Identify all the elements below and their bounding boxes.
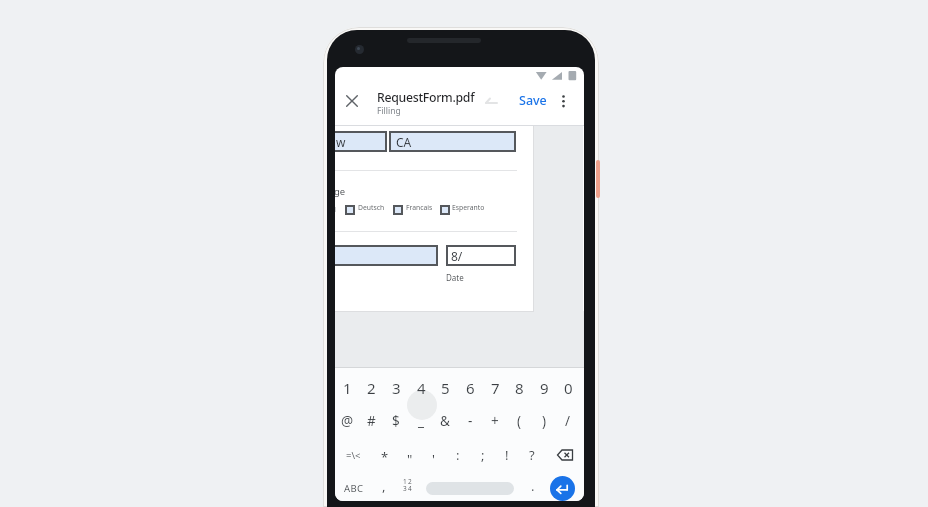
- staticText: 12: [403, 477, 413, 486]
- staticText: Save: [519, 92, 547, 109]
- staticText: *: [381, 448, 389, 466]
- button[interactable]: 0: [557, 378, 579, 398]
- staticText: 2: [367, 378, 376, 398]
- staticText: _: [418, 412, 424, 430]
- staticText: Esperanto: [452, 203, 485, 212]
- staticText: +: [491, 412, 499, 430]
- staticText: ;: [481, 446, 485, 464]
- staticText: CA: [396, 134, 412, 150]
- staticText: Date: [446, 272, 464, 283]
- button[interactable]: /: [557, 411, 579, 431]
- button[interactable]: .: [522, 476, 544, 496]
- button[interactable]: _: [410, 411, 432, 431]
- button[interactable]: #: [360, 411, 382, 431]
- staticText: Francais: [406, 203, 433, 212]
- button[interactable]: 2: [360, 378, 382, 398]
- button[interactable]: *: [374, 447, 396, 467]
- staticText: 6: [466, 378, 475, 398]
- staticText: ge: [335, 185, 346, 198]
- button[interactable]: ;: [472, 445, 494, 465]
- staticText: 7: [491, 378, 500, 398]
- staticText: Deutsch: [358, 203, 385, 212]
- staticText: w: [336, 134, 346, 150]
- button[interactable]: ): [533, 411, 555, 431]
- staticText: :: [456, 446, 460, 464]
- staticText: 3: [392, 378, 401, 398]
- staticText: 34: [403, 484, 413, 493]
- staticText: (: [517, 412, 522, 430]
- button[interactable]: ?: [521, 445, 543, 465]
- staticText: &: [440, 412, 450, 430]
- button[interactable]: @: [336, 411, 358, 431]
- staticText: 5: [441, 378, 450, 398]
- button[interactable]: ,: [373, 476, 395, 496]
- staticText: #: [367, 412, 376, 430]
- button[interactable]: [446, 245, 516, 266]
- button[interactable]: +: [484, 411, 506, 431]
- staticText: !: [505, 446, 509, 464]
- button[interactable]: 5: [434, 378, 456, 398]
- staticText: ): [542, 412, 547, 430]
- button[interactable]: [389, 131, 516, 152]
- button[interactable]: 4: [410, 378, 432, 398]
- staticText: l: [335, 204, 336, 214]
- button[interactable]: [335, 245, 438, 266]
- staticText: 9: [540, 378, 549, 398]
- staticText: 8/: [451, 248, 463, 264]
- staticText: 1: [343, 378, 352, 398]
- staticText: 4: [417, 378, 426, 398]
- staticText: ?: [529, 446, 535, 464]
- staticText: =\<: [346, 449, 361, 462]
- staticText: ": [407, 450, 413, 468]
- staticText: RequestForm.pdf: [377, 89, 475, 106]
- button[interactable]: [557, 93, 570, 110]
- button[interactable]: [426, 482, 514, 495]
- button[interactable]: [440, 205, 450, 215]
- button[interactable]: $: [385, 411, 407, 431]
- staticText: -: [468, 412, 473, 430]
- button[interactable]: !: [496, 445, 518, 465]
- staticText: Filling: [377, 105, 401, 117]
- button[interactable]: 3: [385, 378, 407, 398]
- staticText: ,: [382, 477, 386, 495]
- button[interactable]: ABC: [340, 479, 368, 498]
- button[interactable]: [556, 448, 575, 462]
- staticText: ': [432, 450, 435, 468]
- staticText: .: [531, 477, 535, 495]
- button[interactable]: [335, 131, 387, 152]
- button[interactable]: 1: [336, 378, 358, 398]
- button[interactable]: (: [508, 411, 530, 431]
- button[interactable]: =\<: [342, 445, 364, 465]
- button[interactable]: [345, 205, 355, 215]
- button[interactable]: [393, 205, 403, 215]
- button[interactable]: 9: [533, 378, 555, 398]
- button[interactable]: 8: [508, 378, 530, 398]
- button[interactable]: [344, 93, 360, 109]
- button[interactable]: [550, 476, 575, 501]
- staticText: @: [341, 412, 354, 430]
- button[interactable]: ": [399, 449, 421, 469]
- button[interactable]: :: [447, 445, 469, 465]
- staticText: 0: [564, 378, 573, 398]
- button[interactable]: 6: [459, 378, 481, 398]
- button[interactable]: 7: [484, 378, 506, 398]
- button[interactable]: &: [434, 411, 456, 431]
- button[interactable]: -: [459, 411, 481, 431]
- button[interactable]: Save: [517, 91, 549, 109]
- staticText: 8: [515, 378, 524, 398]
- staticText: /: [565, 412, 571, 430]
- staticText: ABC: [344, 482, 364, 495]
- button[interactable]: ': [422, 449, 444, 469]
- staticText: $: [392, 412, 400, 430]
